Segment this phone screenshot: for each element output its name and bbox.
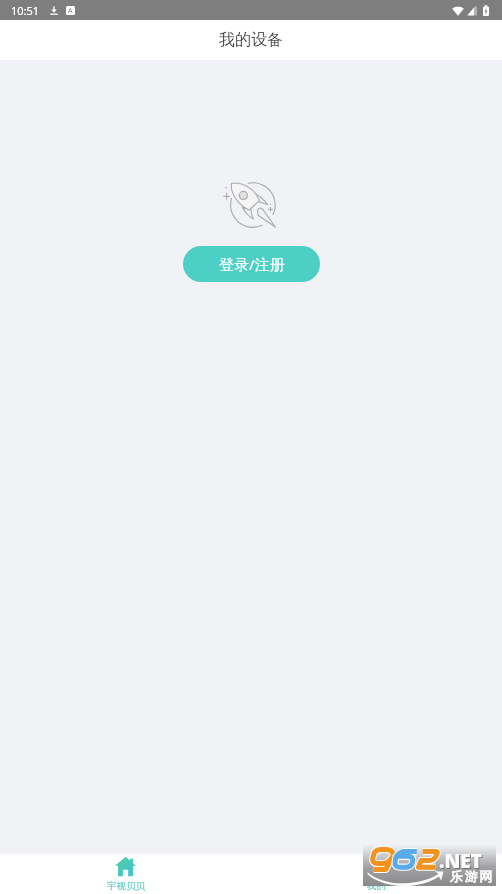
button[interactable]: 宇视贝贝: [0, 854, 251, 894]
staticText: A: [68, 6, 73, 15]
staticText: 宇视贝贝: [107, 880, 145, 892]
staticText: .NET: [440, 849, 483, 875]
staticText: .NET: [439, 848, 482, 874]
staticText: 登录/注册: [219, 254, 285, 274]
staticText: 我的设备: [219, 30, 283, 50]
button[interactable]: 登录/注册: [183, 246, 320, 282]
staticText: 10:51: [11, 3, 40, 18]
staticText: 乐游网: [450, 868, 494, 884]
staticText: 我的: [367, 880, 386, 892]
button[interactable]: 我的: [251, 854, 502, 894]
